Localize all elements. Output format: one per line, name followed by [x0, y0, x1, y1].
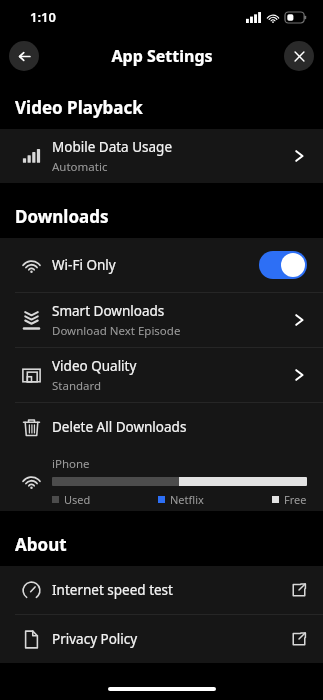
- other: Open link: [291, 582, 307, 598]
- staticText: Mobile Data Usage: [52, 138, 173, 156]
- staticText: Internet speed test: [52, 581, 173, 599]
- button[interactable]: Smart Downloads: [0, 293, 323, 347]
- staticText: iPhone: [52, 456, 90, 472]
- staticText: App Settings: [111, 45, 213, 67]
- staticText: Download Next Episode: [52, 323, 181, 339]
- button[interactable]: Privacy Policy: [0, 615, 323, 663]
- button[interactable]: Wi-Fi Only: [0, 238, 323, 292]
- staticText: About: [15, 533, 67, 556]
- staticText: Smart Downloads: [52, 302, 165, 320]
- staticText: Standard: [52, 378, 102, 394]
- staticText: Video Quality: [52, 357, 137, 375]
- staticText: Privacy Policy: [52, 630, 138, 648]
- staticText: Downloads: [15, 205, 109, 228]
- button[interactable]: Delete All Downloads: [0, 403, 323, 451]
- button[interactable]: Mobile Data Usage: [0, 129, 323, 183]
- staticText: Used: [64, 492, 91, 507]
- staticText: Netflix: [170, 492, 204, 507]
- staticText: Video Playback: [15, 96, 143, 119]
- button[interactable]: Close: [284, 41, 314, 71]
- button[interactable]: Internet speed test: [0, 566, 323, 614]
- staticText: Delete All Downloads: [52, 418, 187, 436]
- button[interactable]: Video Quality: [0, 348, 323, 402]
- button[interactable]: Back: [9, 41, 39, 71]
- other: Open link: [291, 631, 307, 647]
- staticText: Free: [284, 492, 307, 507]
- staticText: Wi-Fi Only: [52, 256, 259, 274]
- staticText: 1:10: [30, 8, 56, 26]
- staticText: Automatic: [52, 159, 108, 175]
